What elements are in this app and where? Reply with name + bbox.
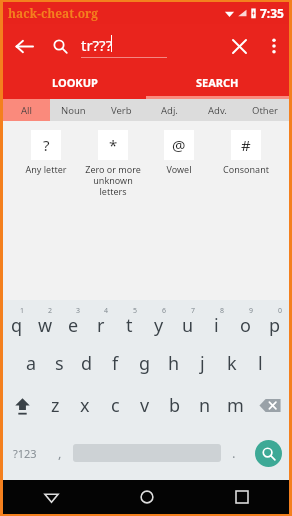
staticText: k <box>227 351 237 376</box>
button[interactable]: d <box>73 342 101 384</box>
button[interactable]: More options <box>259 31 289 61</box>
staticText: 4 <box>104 306 109 316</box>
staticText: 2 <box>48 306 53 316</box>
button[interactable]: Back <box>3 480 99 514</box>
button[interactable]: g <box>130 342 159 384</box>
staticText: h <box>168 351 180 376</box>
button[interactable]: h <box>159 342 188 384</box>
staticText: Vowel <box>147 163 211 175</box>
button[interactable]: Search <box>255 440 282 467</box>
staticText: Any letter <box>14 163 78 175</box>
staticText: Zero or more unknown letters <box>81 163 145 197</box>
staticText: u <box>182 313 194 338</box>
staticText: LOOKUP <box>52 75 98 90</box>
button[interactable]: j <box>188 342 217 384</box>
button[interactable]: . <box>221 426 247 480</box>
staticText: 1 <box>20 306 25 316</box>
button[interactable]: All <box>3 99 50 121</box>
staticText: d <box>81 351 93 376</box>
staticText: y <box>154 313 164 338</box>
staticText: 7 <box>191 306 196 316</box>
staticText: n <box>199 393 211 418</box>
staticText: x <box>80 393 90 418</box>
button[interactable]: Noun <box>50 99 97 121</box>
button[interactable]: z <box>41 384 70 426</box>
staticText: v <box>140 393 150 418</box>
staticText: q <box>11 313 23 338</box>
button[interactable]: Adj. <box>145 99 193 121</box>
button[interactable]: Other <box>241 99 289 121</box>
button[interactable]: 3 <box>59 304 87 342</box>
staticText: Consonant <box>214 163 278 175</box>
button[interactable]: Recents <box>194 480 289 514</box>
button[interactable]: x <box>70 384 100 426</box>
button[interactable]: b <box>160 384 190 426</box>
staticText: e <box>68 313 79 338</box>
button[interactable]: @ <box>147 130 211 175</box>
staticText: Verb <box>111 104 132 117</box>
staticText: 7:35 <box>260 5 284 21</box>
button[interactable]: LOOKUP <box>3 68 146 96</box>
staticText: hack-cheat.org <box>8 5 99 21</box>
staticText: z <box>51 393 60 418</box>
staticText: b <box>169 393 181 418</box>
button[interactable]: 7 <box>173 304 202 342</box>
button[interactable]: f <box>101 342 130 384</box>
button[interactable]: Verb <box>97 99 145 121</box>
staticText: l <box>258 351 263 376</box>
staticText: All <box>21 104 32 117</box>
staticText: p <box>269 313 281 338</box>
staticText: Adj. <box>161 104 178 117</box>
button[interactable]: Adv. <box>193 99 241 121</box>
button[interactable]: 6 <box>144 304 173 342</box>
button[interactable]: a <box>17 342 45 384</box>
staticText: t <box>126 313 133 338</box>
button[interactable]: , <box>47 426 73 480</box>
staticText: c <box>111 393 120 418</box>
staticText: 3 <box>76 306 81 316</box>
staticText: tr??? <box>81 35 113 55</box>
button[interactable]: s <box>45 342 73 384</box>
button[interactable]: Backspace <box>250 384 289 426</box>
staticText: . <box>232 444 236 462</box>
staticText: ? <box>43 135 50 155</box>
button[interactable]: Shift <box>3 384 41 426</box>
button[interactable]: Home <box>99 480 194 514</box>
staticText: Noun <box>61 104 86 117</box>
button[interactable]: l <box>246 342 275 384</box>
button[interactable]: c <box>100 384 130 426</box>
staticText: 9 <box>249 306 254 316</box>
staticText: o <box>240 313 251 338</box>
staticText: r <box>97 313 105 338</box>
button[interactable]: m <box>220 384 250 426</box>
button[interactable]: Back <box>3 25 45 67</box>
staticText: , <box>58 444 62 462</box>
staticText: @ <box>172 135 186 155</box>
staticText: 8 <box>220 306 225 316</box>
button[interactable]: Clear <box>219 26 259 66</box>
button[interactable]: SEARCH <box>146 68 289 96</box>
button[interactable]: * <box>81 130 145 197</box>
button[interactable]: k <box>217 342 246 384</box>
staticText: g <box>139 351 151 376</box>
staticText: ?123 <box>13 446 37 461</box>
button[interactable]: 1 <box>3 304 31 342</box>
staticText: s <box>55 351 64 376</box>
button[interactable]: v <box>130 384 160 426</box>
button[interactable]: # <box>214 130 278 175</box>
button[interactable]: Search icon <box>45 31 75 61</box>
button[interactable]: 8 <box>202 304 231 342</box>
staticText: 0 <box>278 306 283 316</box>
button[interactable]: n <box>190 384 220 426</box>
button[interactable]: ?123 <box>3 426 47 480</box>
button[interactable]: 9 <box>231 304 260 342</box>
staticText: Other <box>252 104 279 117</box>
button[interactable]: 2 <box>31 304 59 342</box>
button[interactable]: ? <box>14 130 78 175</box>
button[interactable]: 0 <box>260 304 289 342</box>
staticText: i <box>214 313 219 338</box>
button[interactable]: 5 <box>115 304 144 342</box>
button[interactable]: 4 <box>87 304 115 342</box>
staticText: * <box>109 135 118 155</box>
